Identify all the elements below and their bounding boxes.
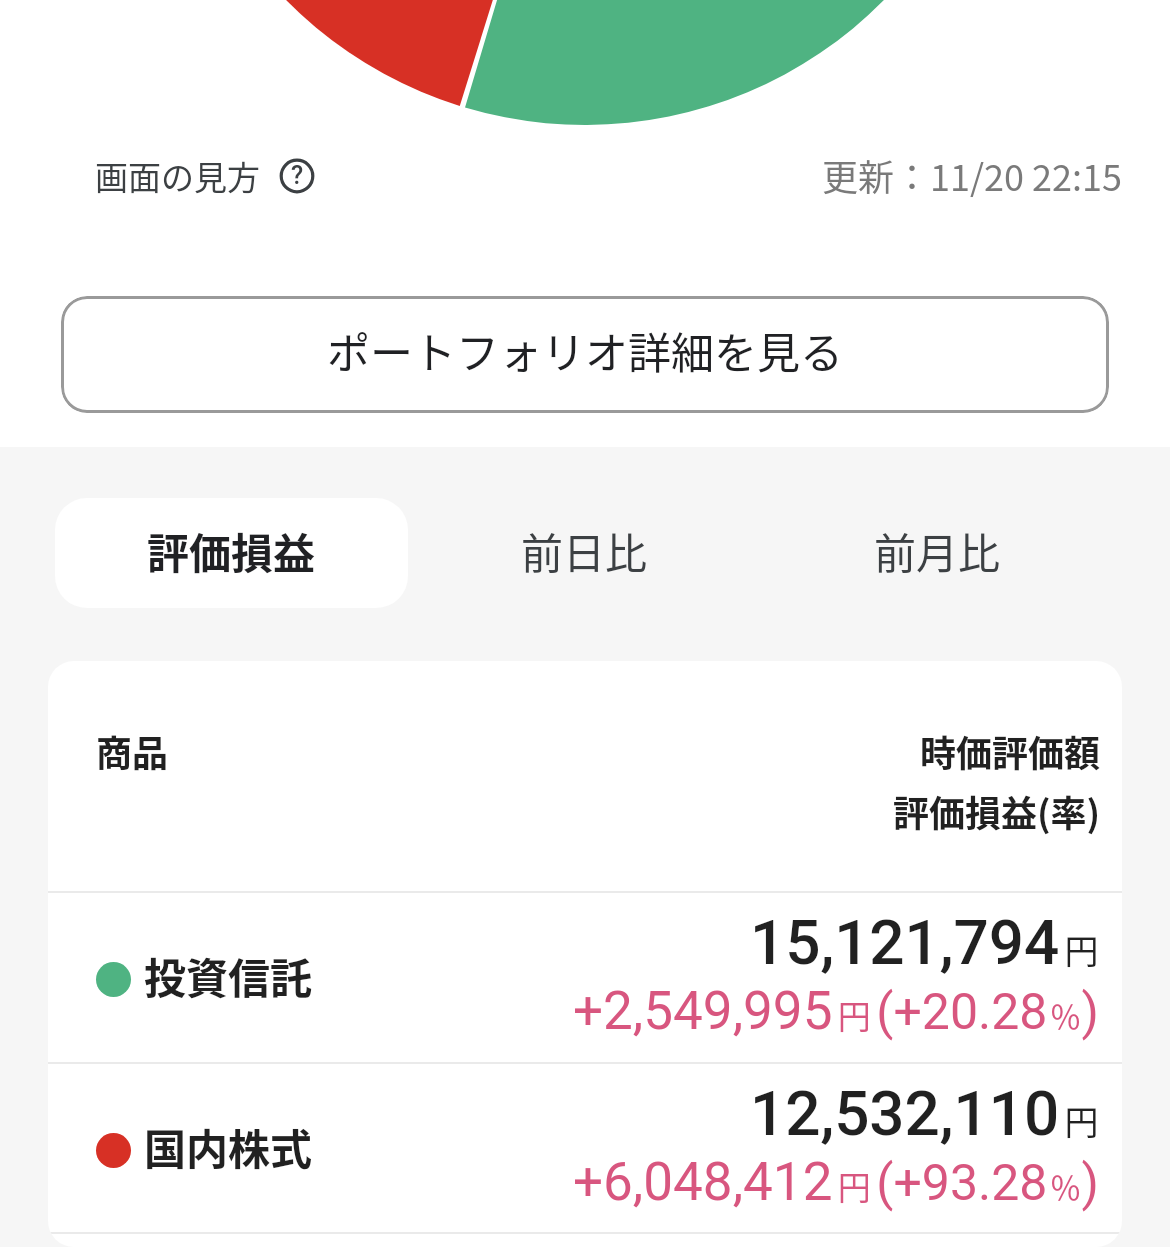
staticText: +2,549,995 円 (+20.28 ％) xyxy=(573,980,1099,1042)
staticText: 国内株式 xyxy=(144,1116,313,1177)
button[interactable]: 評価損益 xyxy=(55,498,408,608)
staticText: ? xyxy=(291,161,304,190)
staticText: ポートフォリオ詳細を見る xyxy=(327,319,843,381)
staticText: 前月比 xyxy=(874,520,1001,581)
button[interactable]: 前日比 xyxy=(408,498,761,608)
staticText: 更新：11/20 22:15 xyxy=(822,149,1123,201)
button[interactable]: 国内株式 xyxy=(48,1064,1122,1232)
other: 画面の見方 xyxy=(279,158,315,194)
staticText: 投資信託 xyxy=(144,945,313,1006)
staticText: +6,048,412 円 (+93.28 ％) xyxy=(573,1151,1099,1213)
staticText: 商品 xyxy=(96,725,169,777)
button[interactable]: 投資信託 xyxy=(48,893,1122,1062)
staticText: 評価損益(率) xyxy=(893,785,1101,837)
button[interactable]: ポートフォリオ詳細を見る xyxy=(61,296,1109,413)
staticText: 時価評価額 xyxy=(920,725,1101,777)
button[interactable]: 画面の見方 xyxy=(95,152,315,200)
button[interactable]: 前月比 xyxy=(761,498,1114,608)
staticText: 15,121,794 円 xyxy=(750,906,1099,979)
staticText: 前日比 xyxy=(521,520,648,581)
staticText: 画面の見方 xyxy=(95,152,260,200)
staticText: 12,532,110 円 xyxy=(750,1077,1099,1150)
staticText: 評価損益 xyxy=(147,520,316,581)
